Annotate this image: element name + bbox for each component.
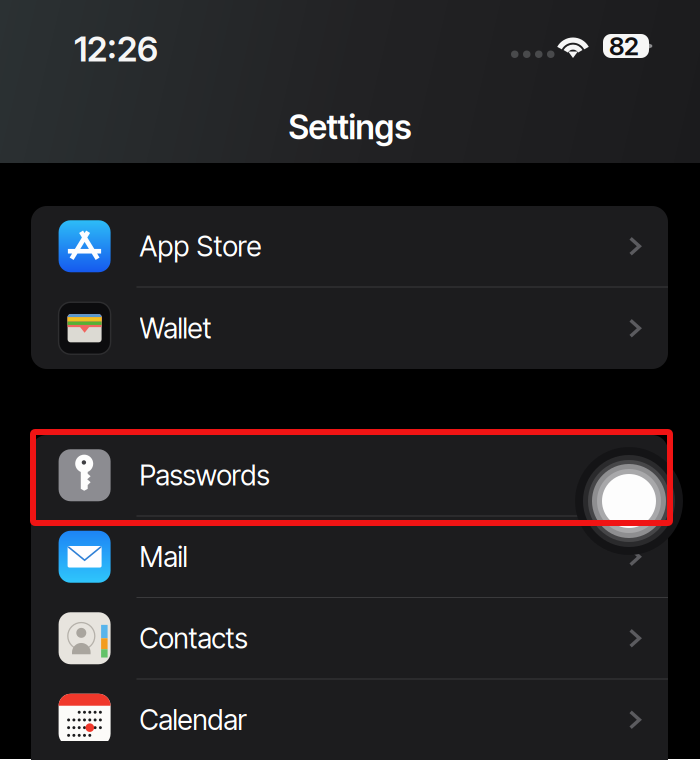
staticText: Passwords	[140, 458, 270, 492]
button[interactable]: Mail	[31, 516, 668, 598]
staticText: Contacts	[140, 621, 248, 655]
staticText: Wallet	[140, 311, 212, 345]
button[interactable]: Calendar	[31, 679, 668, 760]
button[interactable]: Wallet	[31, 287, 668, 369]
staticText: Settings	[288, 107, 411, 147]
staticText: 82	[609, 31, 639, 61]
button[interactable]: App Store	[31, 206, 668, 287]
staticText: 12:26	[74, 28, 158, 70]
staticText: App Store	[140, 229, 262, 263]
button[interactable]: Passwords	[31, 435, 668, 516]
staticText: Calendar	[140, 703, 247, 737]
staticText: Mail	[140, 540, 188, 574]
button[interactable]: Contacts	[31, 598, 668, 679]
